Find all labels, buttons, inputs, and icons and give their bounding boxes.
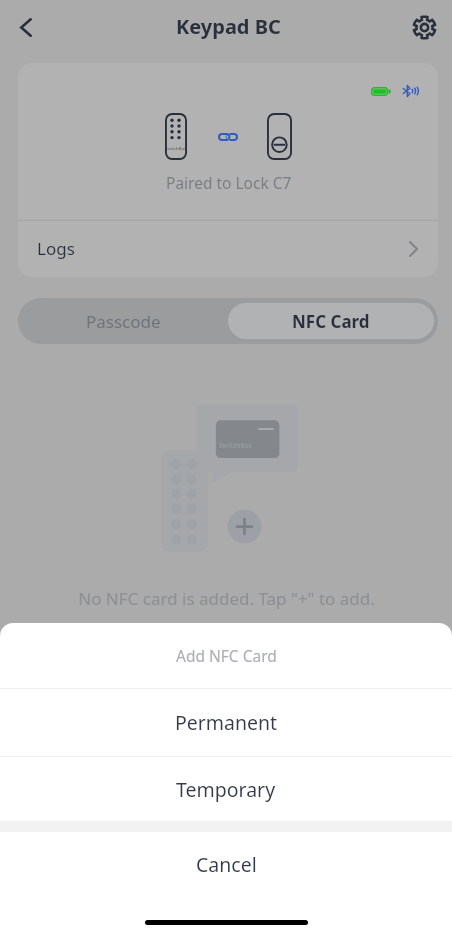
staticText: SwitchBot: [165, 146, 187, 152]
button[interactable]: Temporary: [0, 757, 452, 821]
staticText: Keypad BC: [176, 13, 281, 40]
staticText: Add NFC Card: [176, 645, 277, 666]
button[interactable]: Passcode: [18, 298, 228, 344]
staticText: Logs: [37, 237, 75, 260]
staticText: Cancel: [196, 851, 257, 878]
button[interactable]: Settings: [401, 4, 447, 50]
button[interactable]: Permanent: [0, 689, 452, 756]
staticText: No NFC card is added. Tap "+" to add.: [78, 587, 375, 610]
staticText: Temporary: [176, 776, 276, 803]
staticText: Paired to Lock C7: [166, 172, 292, 193]
staticText: Passcode: [86, 310, 161, 333]
staticText: SwitchBot: [219, 441, 252, 450]
button[interactable]: Logs: [18, 221, 438, 277]
staticText: NFC Card: [292, 310, 370, 333]
button[interactable]: NFC Card: [228, 303, 434, 339]
staticText: Permanent: [175, 709, 278, 736]
button[interactable]: Back: [3, 4, 49, 50]
button[interactable]: Cancel: [0, 832, 452, 897]
